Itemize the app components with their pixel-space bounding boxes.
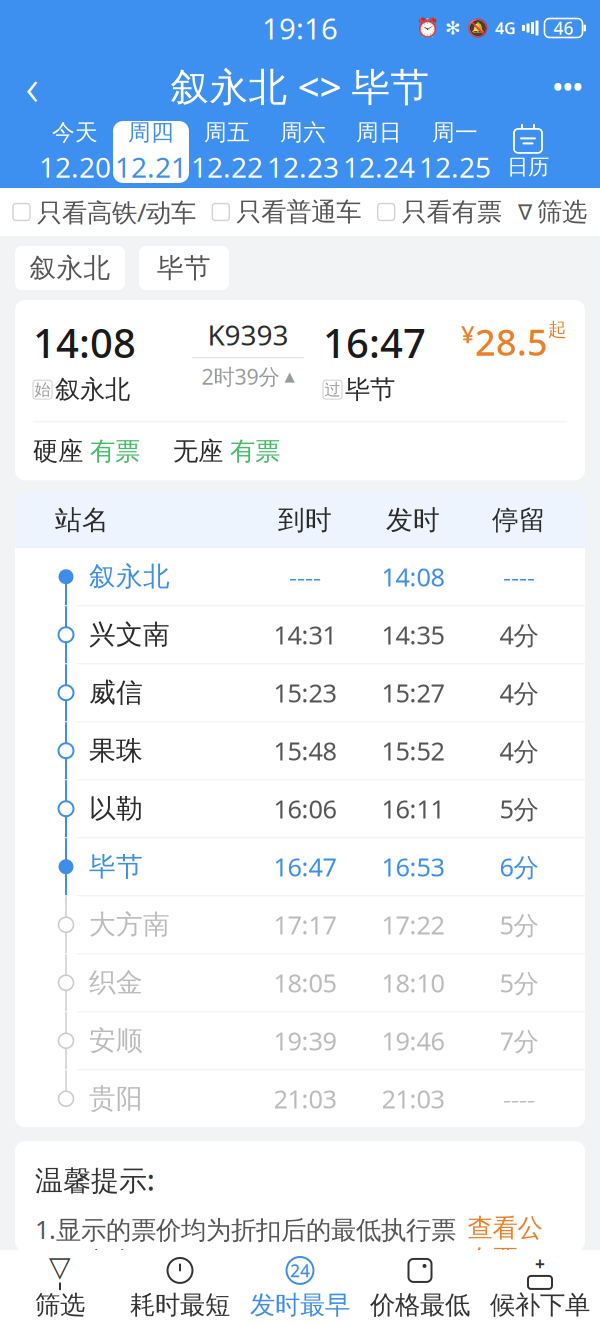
button[interactable]: 周六 [265, 121, 341, 183]
button[interactable]: 24 [240, 1250, 360, 1326]
button[interactable]: 只看有票 [378, 190, 502, 233]
staticText: 始 [34, 380, 50, 400]
staticText: 发时最早 [250, 1289, 350, 1320]
staticText: 19:16 [262, 8, 338, 47]
staticText: ∇ [518, 200, 532, 224]
staticText: 21:03 [273, 1082, 336, 1115]
staticText: 15:23 [273, 676, 336, 709]
staticText: 1.显示的票价均为折扣后的最低执行票价，点击 [35, 1212, 456, 1277]
staticText: ¥ [461, 318, 475, 350]
button[interactable]: 查看公布票 [456, 1212, 554, 1277]
staticText: 12.24 [343, 148, 415, 185]
staticText: 5分 [499, 966, 538, 999]
staticText: 4G [495, 17, 516, 39]
button[interactable]: 只看普通车 [212, 190, 361, 233]
staticText: 价格最低 [370, 1289, 470, 1320]
button[interactable]: ∇ [518, 190, 587, 233]
staticText: 5分 [499, 908, 538, 941]
staticText: 周五 [204, 118, 250, 146]
staticText: 17:22 [381, 908, 444, 941]
staticText: 12.22 [191, 148, 263, 185]
button[interactable]: 只看高铁/动车 [13, 189, 196, 235]
staticText: 叙永北 [55, 374, 130, 405]
staticText: 16:53 [381, 850, 444, 883]
staticText: 毕节 [345, 374, 395, 405]
staticText: 4分 [499, 676, 538, 709]
staticText: 站名 [55, 504, 109, 537]
staticText: 耗时最短 [130, 1289, 230, 1320]
staticText: 筛选 [35, 1289, 85, 1320]
staticText: 🔕 [467, 18, 489, 38]
staticText: 周一 [432, 118, 478, 146]
staticText: 毕节 [157, 252, 211, 284]
staticText: 贵阳 [89, 1082, 143, 1115]
button[interactable]: 叙永北 [15, 246, 125, 290]
staticText: 有票 [90, 436, 140, 467]
staticText: 有票 [230, 436, 280, 467]
staticText: 6分 [499, 850, 538, 883]
staticText: 12.25 [419, 148, 491, 185]
staticText: 14:31 [273, 618, 336, 651]
staticText: 今天 [52, 118, 98, 146]
staticText: 停留 [492, 504, 546, 537]
staticText: 叙永北 [29, 252, 110, 284]
staticText: 12.23 [267, 148, 339, 185]
button[interactable]: 今天 [37, 121, 113, 183]
staticText: 15:48 [273, 734, 336, 767]
staticText: 4分 [499, 734, 538, 767]
staticText: 起 [548, 318, 567, 341]
staticText: 兴文南 [89, 618, 170, 651]
staticText: 查看公布票 [467, 1212, 542, 1275]
staticText: 日历 [507, 154, 549, 180]
staticText: 15:52 [381, 734, 444, 767]
staticText: 16:47 [323, 316, 426, 369]
button[interactable]: 价格最低 [360, 1250, 480, 1326]
staticText: ‹ [25, 52, 38, 120]
staticText: 周四 [128, 118, 174, 146]
staticText: 以勒 [89, 792, 143, 825]
staticText: 硬座 [33, 436, 83, 467]
staticText: ---- [503, 1082, 535, 1115]
staticText: + [535, 1252, 545, 1275]
button[interactable]: + [480, 1250, 600, 1326]
staticText: 5分 [499, 792, 538, 825]
staticText: 温馨提示: [35, 1161, 155, 1198]
staticText: 18:10 [381, 966, 444, 999]
button[interactable]: ▽ [0, 1250, 120, 1326]
staticText: ⏰ [416, 17, 439, 39]
staticText: 叙永北 [89, 560, 170, 593]
staticText: 周日 [356, 118, 402, 146]
staticText: 无座 [173, 436, 223, 467]
button[interactable]: 周日 [341, 121, 417, 183]
button[interactable]: 毕节 [139, 246, 229, 290]
staticText: 19:39 [273, 1024, 336, 1057]
staticText: 只看高铁/动车 [37, 195, 196, 229]
staticText: 7分 [499, 1024, 538, 1057]
button[interactable]: 返回 [0, 58, 64, 114]
staticText: 到时 [278, 504, 332, 537]
staticText: 18:05 [273, 966, 336, 999]
staticText: 织金 [89, 966, 143, 999]
staticText: 14:08 [33, 316, 136, 369]
staticText: 12.20 [39, 148, 111, 185]
staticText: 28.5 [475, 318, 548, 366]
button[interactable]: 耗时最短 [120, 1250, 240, 1326]
staticText: 果珠 [89, 734, 143, 767]
staticText: ▽ [49, 1251, 71, 1282]
staticText: 筛选 [537, 196, 587, 227]
button[interactable]: 日历 [493, 121, 563, 183]
staticText: 毕节 [89, 850, 143, 883]
staticText: 过 [324, 380, 340, 400]
button[interactable]: 周一 [417, 121, 493, 183]
staticText: 大方南 [89, 908, 170, 941]
staticText: K9393 [207, 316, 288, 353]
button[interactable]: 更多 [536, 58, 600, 114]
staticText: ••• [553, 69, 583, 103]
staticText: 15:27 [381, 676, 444, 709]
staticText: 14:35 [381, 618, 444, 651]
staticText: 14:08 [381, 560, 444, 593]
button[interactable]: 周五 [189, 121, 265, 183]
button[interactable]: 周四 [113, 121, 189, 183]
staticText: 候补下单 [490, 1289, 590, 1320]
staticText: 12.21 [115, 148, 187, 185]
